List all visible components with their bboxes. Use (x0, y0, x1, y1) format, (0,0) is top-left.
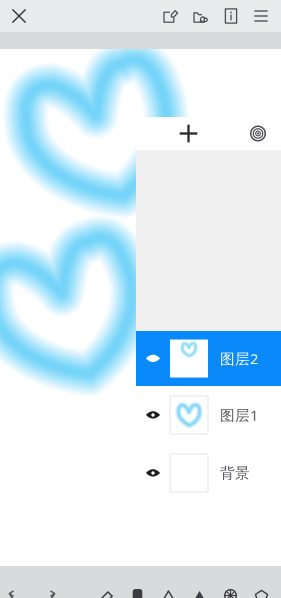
button[interactable]: Fill (184, 589, 215, 598)
button[interactable]: Undo (1, 589, 32, 598)
button[interactable]: Eraser (122, 589, 153, 598)
button[interactable]: 图层1 (136, 386, 281, 444)
button[interactable]: 图层2 (136, 331, 281, 386)
button[interactable]: Redo (32, 589, 63, 598)
button[interactable]: 背景 (136, 444, 281, 502)
button[interactable]: Canvas info (216, 0, 246, 32)
button[interactable]: Brush (91, 589, 122, 598)
button[interactable]: More (246, 0, 276, 32)
button[interactable]: Open file (186, 0, 216, 32)
staticText: 图层1 (220, 405, 258, 425)
button[interactable]: Add layer (165, 117, 211, 150)
button[interactable]: Filters (215, 589, 246, 598)
staticText: 背景 (220, 464, 250, 482)
button[interactable]: New canvas (156, 0, 186, 32)
button[interactable]: Close (0, 0, 38, 32)
button[interactable]: Transform (246, 589, 277, 598)
button[interactable]: Smudge (153, 589, 184, 598)
staticText: 图层2 (220, 349, 258, 368)
button[interactable]: Layer settings (241, 117, 275, 150)
